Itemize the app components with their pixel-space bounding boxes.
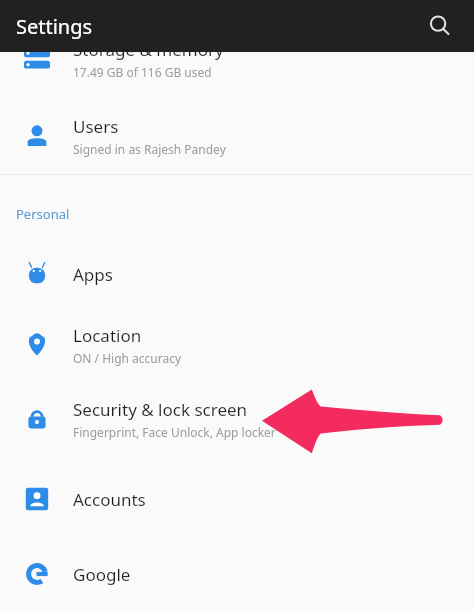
staticText: Location [73,324,142,347]
button[interactable]: Users [0,107,474,165]
staticText: Security & lock screen [73,398,248,421]
staticText: 17.49 GB of 116 GB used [73,64,212,80]
button[interactable]: Storage & memory [0,30,474,88]
button[interactable]: Accounts [0,473,474,525]
staticText: ON / High accuracy [73,350,182,366]
staticText: Settings [16,13,93,40]
staticText: Google [73,563,131,586]
button[interactable]: Search [418,4,462,48]
button[interactable]: Security & lock screen [0,390,474,448]
staticText: Personal [16,205,70,223]
staticText: Fingerprint, Face Unlock, App locker [73,424,276,440]
button[interactable]: Apps [0,248,474,300]
staticText: Signed in as Rajesh Pandey [73,141,226,157]
button[interactable]: Location [0,316,474,374]
staticText: Apps [73,263,113,286]
staticText: Users [73,115,119,138]
staticText: Storage & memory [73,38,224,61]
button[interactable]: Google [0,548,474,600]
staticText: Accounts [73,488,146,511]
